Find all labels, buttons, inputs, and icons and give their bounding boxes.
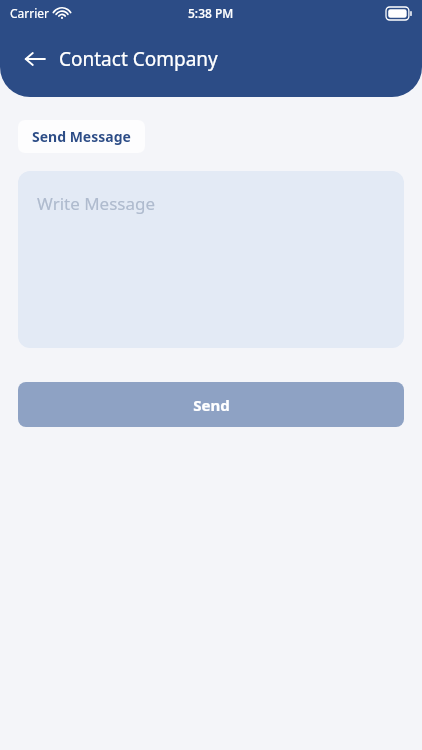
button[interactable]: Send Message: [18, 120, 145, 153]
staticText: Write Message: [37, 192, 156, 215]
staticText: Send Message: [32, 127, 131, 146]
staticText: Contact Company: [59, 46, 218, 72]
button[interactable]: Back: [18, 42, 52, 76]
staticText: Carrier: [10, 5, 50, 21]
button[interactable]: Send: [18, 382, 404, 427]
button[interactable]: Write Message: [18, 171, 404, 348]
staticText: Send: [193, 395, 230, 415]
staticText: 5:38 PM: [188, 5, 234, 21]
